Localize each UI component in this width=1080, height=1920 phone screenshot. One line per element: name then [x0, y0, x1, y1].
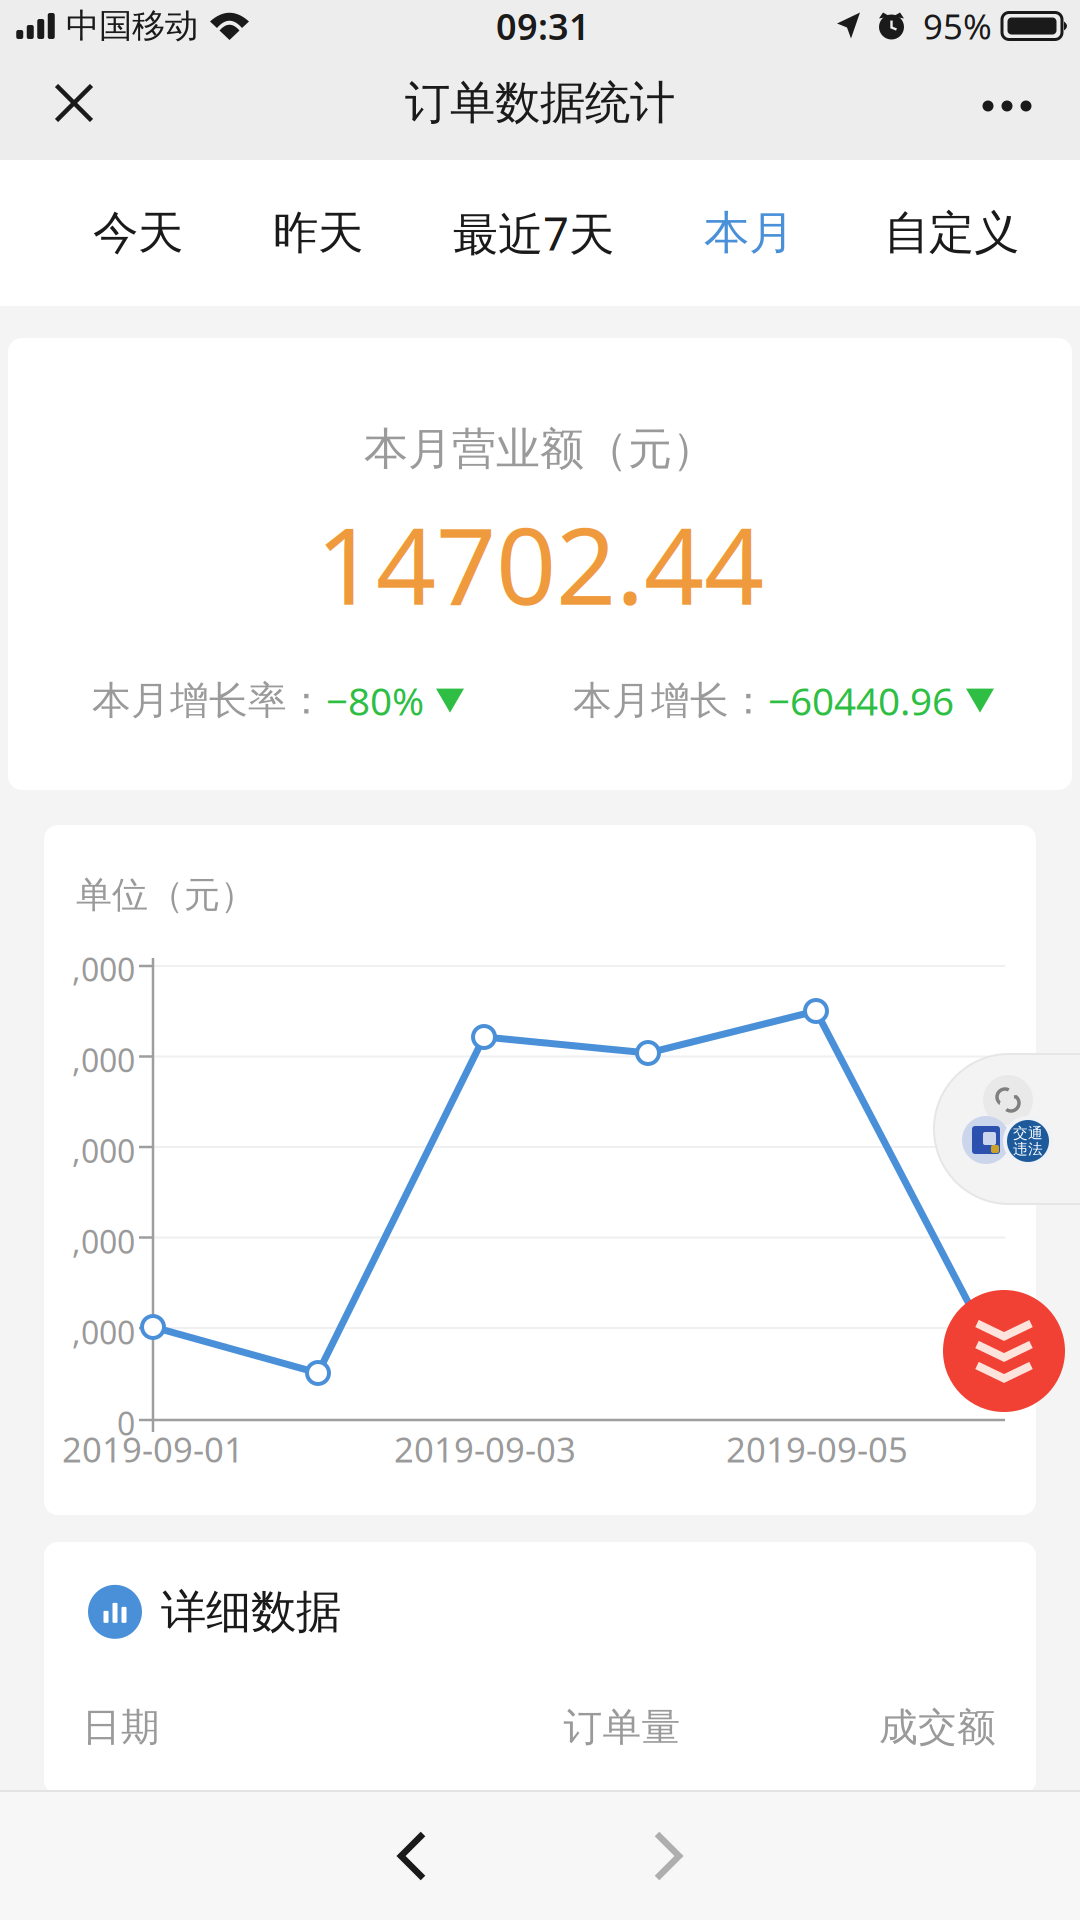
staticText: 中国移动: [66, 5, 198, 46]
button[interactable]: 前进: [608, 1790, 728, 1920]
staticText: 0: [117, 1402, 135, 1444]
staticText: ,000: [72, 1311, 135, 1353]
staticText: ,000: [72, 948, 135, 990]
staticText: 日期: [82, 1704, 160, 1751]
staticText: 昨天: [273, 205, 363, 261]
staticText: 交通: [1013, 1124, 1043, 1142]
staticText: 2019-09-03: [394, 1426, 576, 1472]
staticText: 95%: [923, 3, 992, 49]
staticText: ,000: [72, 1039, 135, 1081]
button[interactable]: 更多: [952, 52, 1062, 160]
staticText: −80%: [326, 675, 424, 726]
staticText: 今天: [93, 205, 183, 261]
staticText: 详细数据: [161, 1584, 341, 1640]
staticText: 成交额: [879, 1704, 996, 1751]
staticText: 违法: [1013, 1140, 1043, 1158]
staticText: 本月营业额（元）: [364, 422, 716, 476]
staticText: 自定义: [884, 205, 1019, 261]
staticText: 订单数据统计: [405, 75, 675, 131]
button[interactable]: 今天: [48, 160, 228, 306]
staticText: 2019-09-05: [726, 1426, 908, 1472]
button[interactable]: 昨天: [228, 160, 408, 306]
staticText: 本月: [704, 205, 794, 261]
staticText: ,000: [72, 1129, 135, 1172]
button[interactable]: 自定义: [839, 160, 1064, 306]
button[interactable]: 后退: [352, 1790, 472, 1920]
staticText: 14702.44: [316, 494, 764, 634]
staticText: 最近7天: [453, 203, 614, 263]
button[interactable]: 最近7天: [408, 160, 659, 306]
staticText: 本月增长率：: [92, 677, 326, 724]
button[interactable]: 本月: [659, 160, 839, 306]
staticText: 本月增长：: [573, 677, 768, 724]
button[interactable]: 关闭: [19, 52, 129, 154]
button[interactable]: 更多操作: [943, 1290, 1065, 1412]
staticText: 2019-09-01: [62, 1426, 244, 1472]
staticText: −60440.96: [768, 675, 954, 726]
staticText: 订单量: [563, 1704, 680, 1751]
staticText: ,000: [72, 1220, 135, 1263]
staticText: 09:31: [496, 2, 590, 50]
staticText: 单位（元）: [76, 873, 256, 917]
